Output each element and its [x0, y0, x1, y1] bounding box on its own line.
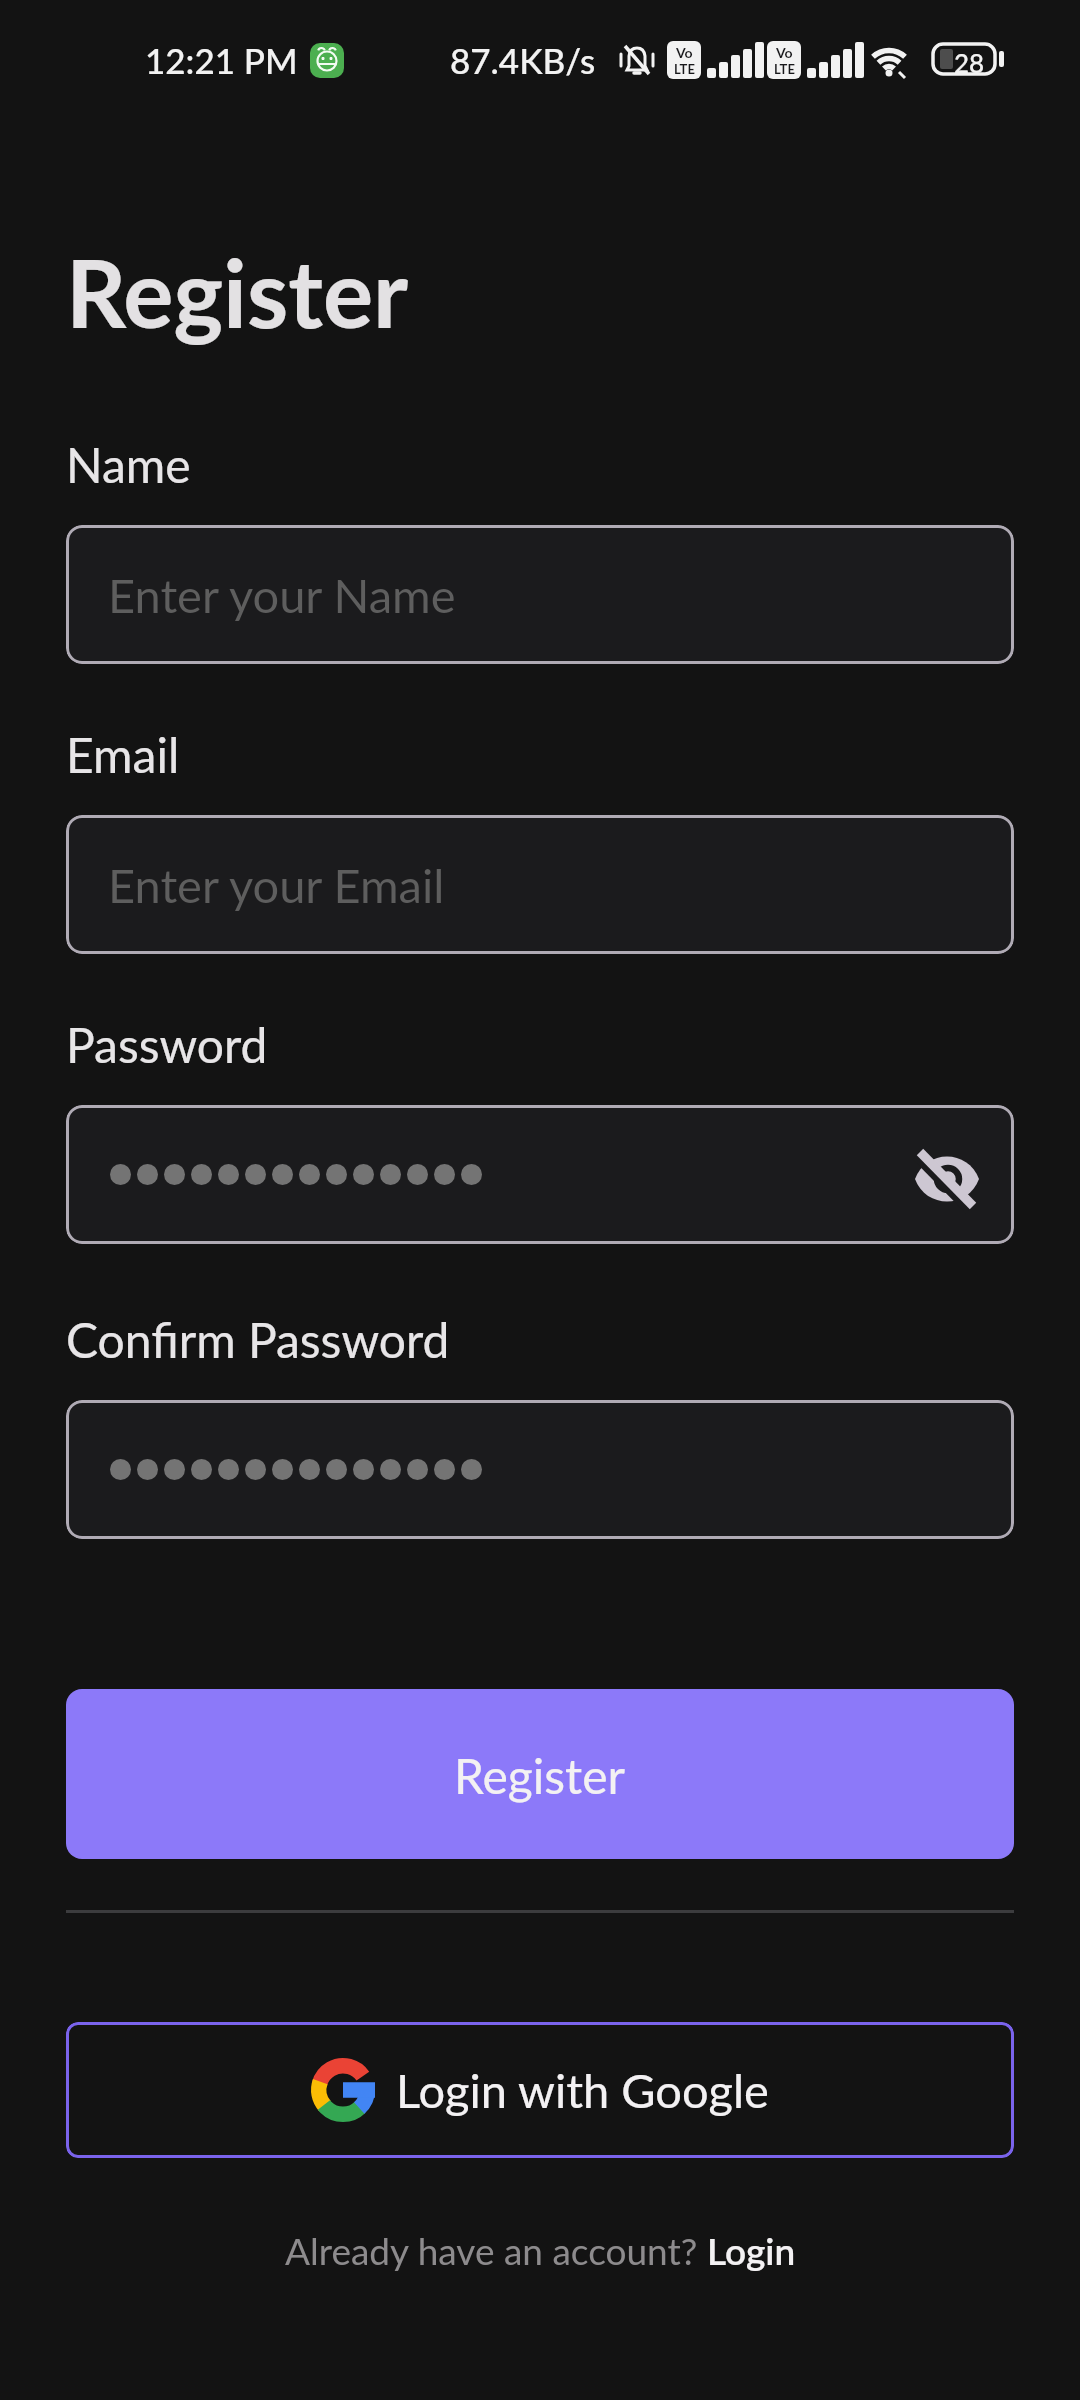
staticText: Vo — [776, 44, 793, 61]
staticText: Already have an account? — [285, 2228, 707, 2272]
staticText: Login — [707, 2228, 796, 2272]
button[interactable]: Login with Google — [66, 2022, 1014, 2158]
staticText: 12:21 PM — [145, 39, 298, 81]
staticText: Login with Google — [396, 2062, 769, 2118]
button[interactable] — [66, 1105, 1014, 1244]
staticText: 28 — [954, 47, 985, 78]
button[interactable]: Already have an account? — [0, 2215, 1080, 2285]
button[interactable] — [66, 1400, 1014, 1539]
staticText: Email — [66, 726, 180, 784]
button[interactable] — [914, 1147, 980, 1213]
staticText: Confirm Password — [66, 1311, 450, 1369]
button[interactable]: Enter your Name — [66, 525, 1014, 664]
staticText: Enter your Email — [108, 857, 445, 913]
staticText: LTE — [774, 61, 795, 77]
staticText: Name — [66, 436, 191, 494]
button[interactable]: Register — [66, 1689, 1014, 1859]
staticText: Register — [66, 235, 409, 348]
staticText: LTE — [674, 61, 695, 77]
staticText: Register — [454, 1747, 626, 1805]
staticText: Password — [66, 1016, 268, 1074]
button[interactable]: Enter your Email — [66, 815, 1014, 954]
staticText: Vo — [676, 44, 693, 61]
staticText: Enter your Name — [108, 567, 456, 623]
staticText: 87.4KB/s — [450, 39, 596, 81]
